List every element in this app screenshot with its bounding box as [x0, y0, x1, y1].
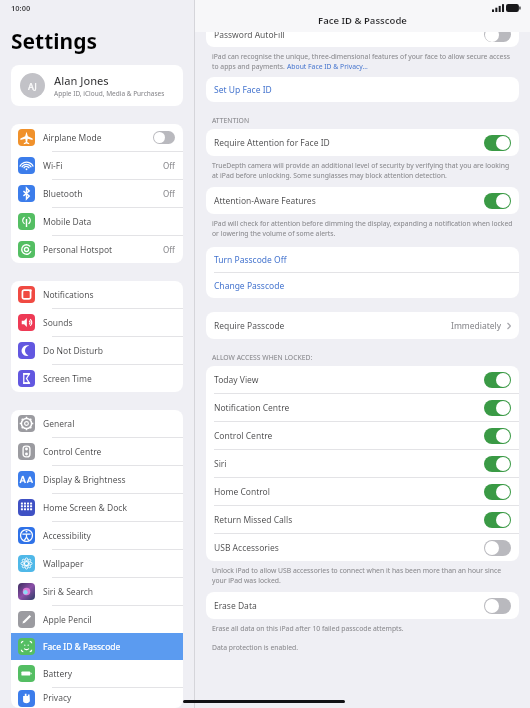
staticText: Unlock iPad to allow USB accessories to … [212, 566, 502, 575]
staticText: Sounds [43, 317, 73, 329]
button[interactable]: Return Missed Calls toggle [484, 512, 511, 528]
button[interactable]: Attention-Aware Features toggle [484, 193, 511, 209]
button[interactable]: Password AutoFill [206, 32, 519, 47]
button[interactable]: Turn Passcode Off [206, 247, 519, 272]
button[interactable]: Siri & Search [11, 578, 183, 605]
staticText: Apple Pencil [43, 614, 92, 626]
button[interactable]: Erase Data [206, 592, 519, 619]
staticText: Notifications [43, 289, 94, 301]
staticText: iPad will check for attention before dim… [212, 219, 513, 228]
button[interactable]: Bluetooth [11, 180, 183, 207]
staticText: Off [163, 188, 175, 199]
button[interactable]: Airplane Mode toggle [153, 131, 175, 144]
staticText: or lowering the volume of some alerts. [212, 229, 336, 238]
button[interactable]: Battery [11, 660, 183, 687]
staticText: Require Attention for Face ID [214, 137, 330, 149]
staticText: Today View [214, 374, 259, 386]
button[interactable]: Require Passcode [206, 312, 519, 339]
button[interactable]: Apple Pencil [11, 606, 183, 633]
staticText: Screen Time [43, 373, 92, 385]
staticText: Off [163, 244, 175, 255]
staticText: Siri [214, 458, 227, 470]
staticText: Change Passcode [214, 280, 285, 292]
staticText: Display & Brightness [43, 474, 126, 486]
staticText: Accessibility [43, 530, 91, 542]
staticText: Wi-Fi [43, 160, 63, 172]
staticText: Control Centre [43, 446, 102, 458]
staticText: Erase all data on this iPad after 10 fai… [212, 624, 404, 633]
button[interactable]: Erase Data toggle [484, 598, 511, 614]
button[interactable]: Notification Centre toggle [484, 400, 511, 416]
staticText: Control Centre [214, 430, 273, 442]
button[interactable]: Control Centre [206, 422, 519, 449]
staticText: Set Up Face ID [214, 84, 272, 96]
staticText: Airplane Mode [43, 132, 102, 144]
staticText: to apps and payments. [212, 62, 287, 71]
staticText: Wallpaper [43, 558, 84, 570]
staticText: Siri & Search [43, 586, 94, 598]
button[interactable]: Control Centre [11, 438, 183, 465]
staticText: AJ [28, 80, 37, 92]
staticText: TrueDepth camera will provide an additio… [212, 161, 510, 170]
staticText: at iPad before unlocking. Some sunglasse… [212, 171, 447, 180]
button[interactable]: Wi-Fi [11, 152, 183, 179]
button[interactable]: Siri toggle [484, 456, 511, 472]
staticText: Settings [11, 27, 98, 56]
staticText: Battery [43, 668, 73, 680]
button[interactable]: Home Screen & Dock [11, 494, 183, 521]
button[interactable]: Home Control [206, 478, 519, 505]
button[interactable]: Siri [206, 450, 519, 477]
button[interactable]: Face ID & Passcode [11, 633, 183, 660]
button[interactable]: Personal Hotspot [11, 236, 183, 263]
button[interactable]: USB Accessories [206, 534, 519, 561]
button[interactable]: Airplane Mode [11, 124, 183, 151]
staticText: ALLOW ACCESS WHEN LOCKED: [212, 353, 313, 362]
button[interactable]: Home Control toggle [484, 484, 511, 500]
staticText: Privacy [43, 692, 72, 704]
button[interactable]: Return Missed Calls [206, 506, 519, 533]
staticText: Face ID & Passcode [43, 641, 121, 653]
staticText: Off [163, 160, 175, 171]
staticText: Do Not Disturb [43, 345, 103, 357]
staticText: Immediately [451, 320, 502, 332]
button[interactable]: Set Up Face ID [206, 77, 519, 102]
button[interactable]: Require Attention for Face ID toggle [484, 135, 511, 151]
staticText: Mobile Data [43, 216, 92, 228]
button[interactable]: Accessibility [11, 522, 183, 549]
staticText: Password AutoFill [214, 32, 285, 41]
button[interactable]: General [11, 410, 183, 437]
button[interactable]: About Face ID & Privacy... [287, 62, 368, 71]
button[interactable]: Sounds [11, 309, 183, 336]
staticText: Face ID & Passcode [318, 14, 407, 27]
staticText: iPad can recognise the unique, three-dim… [212, 52, 510, 61]
button[interactable]: Notification Centre [206, 394, 519, 421]
button[interactable]: Require Attention for Face ID [206, 129, 519, 156]
button[interactable]: Attention-Aware Features [206, 187, 519, 214]
staticText: Erase Data [214, 600, 257, 612]
button[interactable]: Today View [206, 366, 519, 393]
staticText: Notification Centre [214, 402, 290, 414]
button[interactable]: Privacy [11, 688, 183, 708]
staticText: Attention-Aware Features [214, 195, 316, 207]
button[interactable]: Mobile Data [11, 208, 183, 235]
staticText: ATTENTION [212, 116, 250, 125]
staticText: Apple ID, iCloud, Media & Purchases [54, 89, 165, 98]
button[interactable]: Change Passcode [206, 273, 519, 298]
button[interactable]: Today View toggle [484, 372, 511, 388]
button[interactable]: Screen Time [11, 365, 183, 392]
button[interactable]: USB Accessories toggle [484, 540, 511, 556]
button[interactable]: Control Centre toggle [484, 428, 511, 444]
staticText: USB Accessories [214, 542, 279, 554]
staticText: Bluetooth [43, 188, 83, 200]
staticText: Home Control [214, 486, 270, 498]
button[interactable]: AJ [11, 65, 183, 106]
button[interactable]: Display & Brightness [11, 466, 183, 493]
button[interactable]: Password AutoFill toggle [484, 32, 511, 42]
staticText: Alan Jones [54, 73, 109, 88]
staticText: Turn Passcode Off [214, 254, 287, 266]
staticText: Home Screen & Dock [43, 502, 127, 514]
button[interactable]: Wallpaper [11, 550, 183, 577]
button[interactable]: Do Not Disturb [11, 337, 183, 364]
staticText: your iPad was locked. [212, 576, 281, 585]
button[interactable]: Notifications [11, 281, 183, 308]
